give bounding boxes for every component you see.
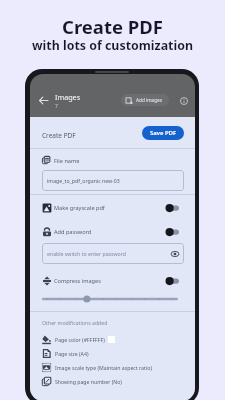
staticText: 7 <box>55 103 58 110</box>
staticText: Create PDF <box>62 14 163 39</box>
button[interactable]: Save PDF <box>142 126 184 140</box>
staticText: Page color (#FFFFFF) <box>55 336 105 343</box>
staticText: Add password <box>54 228 92 236</box>
staticText: Save PDF <box>150 129 177 137</box>
button[interactable]: Showing page number (No) <box>42 376 122 387</box>
staticText: Other modifications added <box>42 319 108 326</box>
staticText: enable switch to enter password <box>47 250 126 257</box>
button[interactable]: enable switch to enter password <box>42 243 184 264</box>
button[interactable]: Add images <box>121 94 169 106</box>
button[interactable]: Compress images <box>30 275 195 286</box>
staticText: Images <box>55 92 81 102</box>
button[interactable]: Page color (#FFFFFF) <box>42 334 115 345</box>
button[interactable]: Add password <box>30 226 195 237</box>
staticText: Page size (A4) <box>55 350 89 357</box>
button[interactable]: image_to_pdf_organic new-03 <box>42 170 184 191</box>
button[interactable]: Page size (A4) <box>42 348 89 359</box>
staticText: Compress images <box>54 277 101 285</box>
staticText: image_to_pdf_organic new-03 <box>47 177 120 184</box>
staticText: Add images <box>136 97 162 103</box>
button[interactable]: Make grayscale pdf <box>30 202 195 213</box>
staticText: Make grayscale pdf <box>54 204 105 212</box>
button[interactable]: Image scale type (Maintain aspect ratio) <box>42 362 152 373</box>
staticText: Showing page number (No) <box>55 378 122 385</box>
staticText: Create PDF <box>42 131 76 140</box>
button[interactable]: Info <box>178 95 190 107</box>
staticText: Image scale type (Maintain aspect ratio) <box>55 364 152 371</box>
staticText: File name <box>54 157 80 165</box>
button[interactable]: Back <box>38 95 49 106</box>
staticText: with lots of customization <box>32 37 193 54</box>
